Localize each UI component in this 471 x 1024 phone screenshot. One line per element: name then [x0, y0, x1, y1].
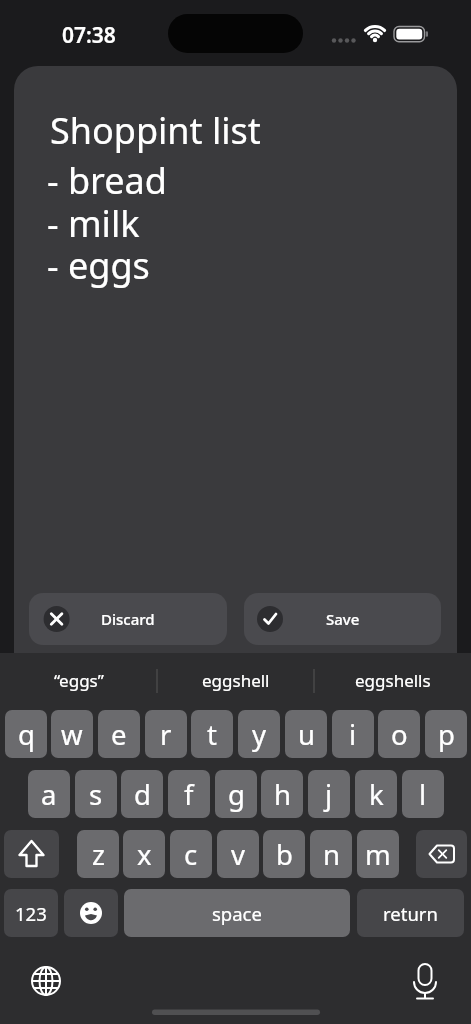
button[interactable]: n — [310, 830, 352, 878]
button[interactable]: r — [145, 710, 187, 758]
staticText: b — [276, 836, 293, 873]
staticText: q — [18, 716, 35, 753]
button[interactable]: p — [425, 710, 467, 758]
staticText: n — [323, 836, 340, 873]
staticText: eggshells — [355, 669, 431, 692]
staticText: - bread - milk - eggs — [47, 156, 167, 290]
button[interactable]: k — [355, 770, 397, 818]
button[interactable]: h — [261, 770, 303, 818]
button[interactable]: eggshells — [314, 653, 471, 708]
button[interactable]: g — [215, 770, 257, 818]
button[interactable]: e — [98, 710, 140, 758]
button[interactable]: c — [170, 830, 212, 878]
staticText: Save — [326, 609, 360, 629]
staticText: j — [325, 776, 333, 813]
staticText: v — [231, 836, 245, 873]
button[interactable]: “eggs” — [0, 653, 157, 708]
staticText: 123 — [15, 901, 47, 926]
staticText: return — [383, 901, 438, 926]
staticText: m — [365, 836, 391, 873]
staticText: k — [369, 776, 384, 813]
staticText: u — [298, 716, 315, 753]
staticText: g — [228, 776, 245, 813]
staticText: o — [391, 716, 408, 753]
button[interactable]: y — [238, 710, 280, 758]
staticText: a — [41, 776, 57, 813]
button[interactable]: q — [5, 710, 47, 758]
button[interactable] — [416, 830, 467, 878]
staticText: f — [184, 776, 194, 813]
staticText: Discard — [101, 609, 155, 629]
button[interactable]: space — [124, 889, 350, 937]
button[interactable] — [4, 830, 59, 878]
button[interactable]: b — [263, 830, 305, 878]
button[interactable] — [64, 889, 118, 937]
button[interactable]: 123 — [4, 889, 58, 937]
staticText: e — [111, 716, 127, 753]
button[interactable]: a — [28, 770, 70, 818]
staticText: h — [274, 776, 291, 813]
staticText: d — [134, 776, 151, 813]
staticText: t — [207, 716, 217, 753]
staticText: l — [419, 776, 427, 813]
staticText: y — [252, 716, 267, 753]
button[interactable]: d — [121, 770, 163, 818]
staticText: s — [89, 776, 103, 813]
button[interactable]: l — [402, 770, 444, 818]
button[interactable]: o — [378, 710, 420, 758]
button[interactable]: f — [168, 770, 210, 818]
button[interactable]: t — [191, 710, 233, 758]
staticText: z — [92, 836, 105, 873]
button[interactable]: return — [357, 889, 464, 937]
staticText: r — [160, 716, 172, 753]
button[interactable]: v — [217, 830, 259, 878]
button[interactable]: s — [75, 770, 117, 818]
staticText: eggshell — [202, 669, 270, 692]
staticText: i — [349, 716, 357, 753]
staticText: 07:38 — [62, 21, 116, 50]
button[interactable]: Discard — [29, 593, 227, 645]
button[interactable]: eggshell — [157, 653, 314, 708]
button[interactable]: w — [51, 710, 93, 758]
staticText: x — [137, 836, 152, 873]
button[interactable]: j — [308, 770, 350, 818]
button[interactable]: u — [285, 710, 327, 758]
staticText: Shoppint list — [50, 106, 261, 155]
button[interactable]: Save — [244, 593, 441, 645]
staticText: c — [184, 836, 198, 873]
button[interactable]: i — [332, 710, 374, 758]
staticText: “eggs” — [54, 669, 104, 692]
staticText: p — [438, 716, 455, 753]
staticText: space — [212, 901, 262, 926]
button[interactable]: z — [77, 830, 119, 878]
button[interactable]: x — [123, 830, 165, 878]
button[interactable]: m — [357, 830, 399, 878]
staticText: w — [61, 716, 83, 753]
